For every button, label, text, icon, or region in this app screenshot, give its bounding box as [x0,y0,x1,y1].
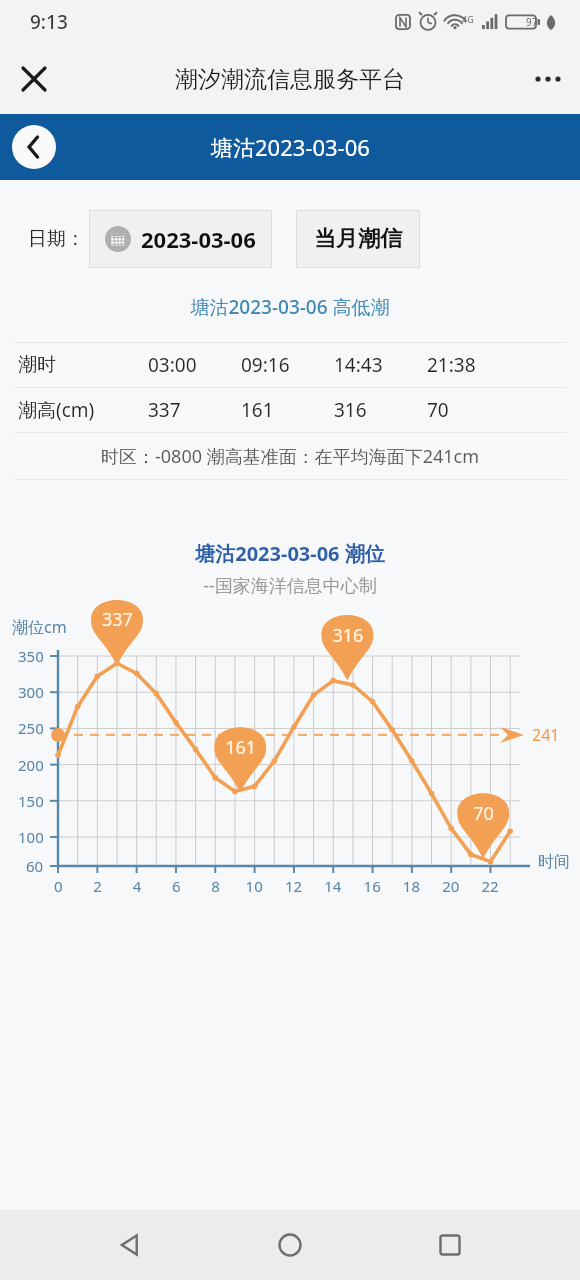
staticText: 161 [241,397,274,423]
staticText: 14:43 [334,352,383,378]
staticText: 潮高(cm) [18,397,95,423]
staticText: 潮汐潮流信息服务平台 [175,65,405,94]
button[interactable]: Recents [420,1215,480,1275]
staticText: 塘沽2023-03-06 潮位 [0,540,580,567]
staticText: 日期： [28,227,85,251]
button[interactable]: Back [12,125,56,169]
staticText: 塘沽2023-03-06 高低潮 [0,294,580,320]
staticText: 337 [148,397,181,423]
button[interactable]: 2023-03-06 [89,210,272,268]
button[interactable]: Close [10,55,58,103]
staticText: 03:00 [148,352,197,378]
staticText: 当月潮信 [314,225,402,253]
staticText: 4G [462,13,474,25]
staticText: --国家海洋信息中心制 [0,573,580,598]
staticText: 9:13 [30,9,68,35]
staticText: 塘沽2023-03-06 [211,132,370,162]
button[interactable]: More options [524,55,572,103]
staticText: 21:38 [427,352,476,378]
button[interactable]: 当月潮信 [296,210,420,268]
staticText: 316 [334,397,367,423]
button[interactable]: Home [260,1215,320,1275]
staticText: 潮时 [18,353,56,377]
button[interactable]: Back [100,1215,160,1275]
staticText: 70 [427,397,449,423]
staticText: 09:16 [241,352,290,378]
staticText: 97 [526,15,538,29]
staticText: 时区：-0800 潮高基准面：在平均海面下241cm [101,444,480,469]
staticText: 2023-03-06 [141,224,256,254]
